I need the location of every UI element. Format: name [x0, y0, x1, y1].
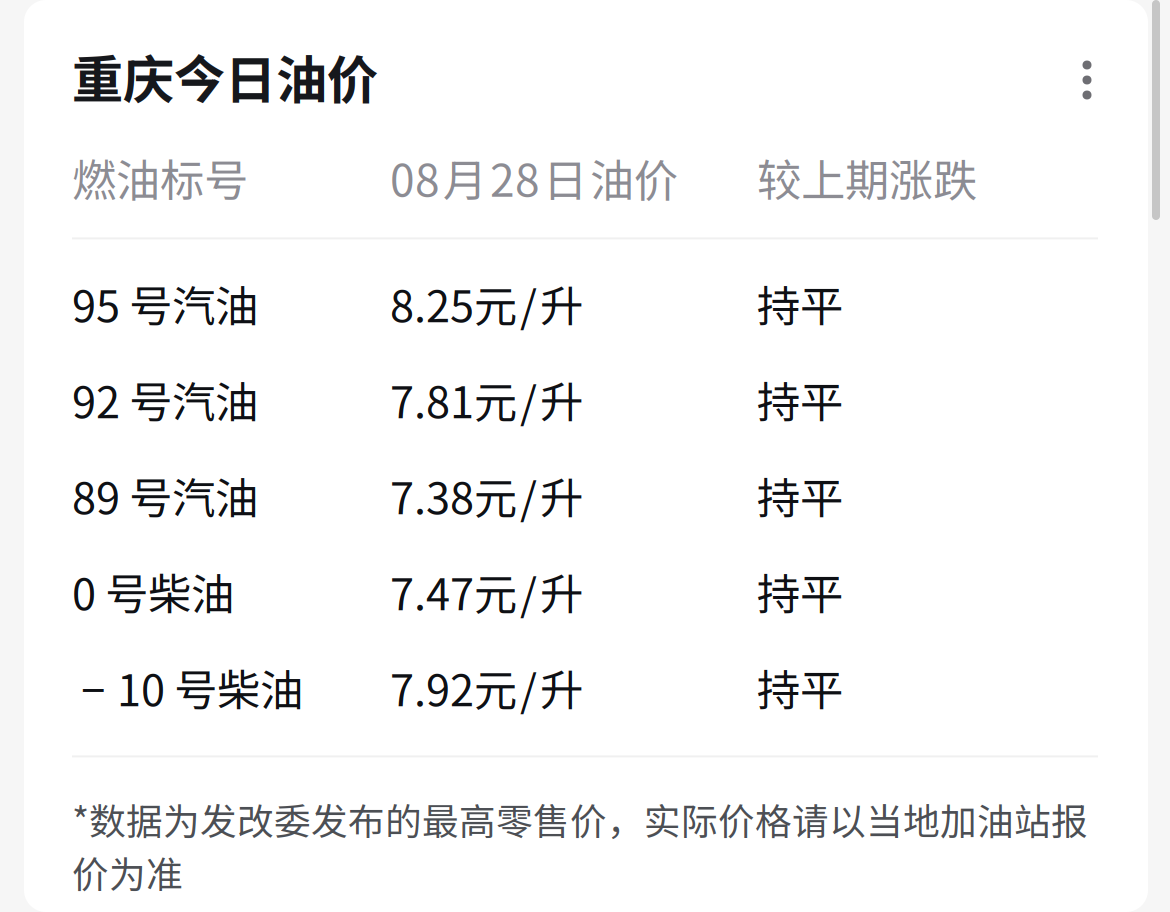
- staticText: 持平: [757, 656, 843, 719]
- button[interactable]: 95 号汽油: [72, 255, 1124, 351]
- button[interactable]: − 10 号柴油: [72, 639, 1124, 735]
- button[interactable]: 92 号汽油: [72, 351, 1124, 447]
- staticText: 8.25元 / 升: [390, 272, 583, 335]
- staticText: 持平: [757, 464, 843, 527]
- staticText: 08 月 28 日 油价: [390, 145, 678, 209]
- staticText: 燃油标号: [72, 145, 248, 209]
- staticText: 重庆今日油价: [72, 39, 378, 113]
- button[interactable]: 0 号柴油: [72, 543, 1124, 639]
- staticText: 持平: [757, 368, 843, 431]
- staticText: 92 号汽油: [72, 368, 258, 431]
- staticText: − 10 号柴油: [72, 656, 303, 719]
- staticText: 95 号汽油: [72, 272, 258, 335]
- staticText: 持平: [757, 560, 843, 623]
- staticText: *数据为发改委发布的最高零售价，实际价格请以当地加油站报价为准: [72, 792, 1088, 899]
- staticText: 持平: [757, 272, 843, 335]
- staticText: 7.38元 / 升: [390, 464, 583, 527]
- staticText: 7.92元 / 升: [390, 656, 583, 719]
- staticText: 7.47元 / 升: [390, 560, 583, 623]
- staticText: 7.81元 / 升: [390, 368, 583, 431]
- staticText: 较上期涨跌: [757, 145, 977, 209]
- button[interactable]: More options: [1063, 39, 1124, 113]
- button[interactable]: 89 号汽油: [72, 447, 1124, 543]
- staticText: 89 号汽油: [72, 464, 258, 527]
- staticText: 0 号柴油: [72, 560, 234, 623]
